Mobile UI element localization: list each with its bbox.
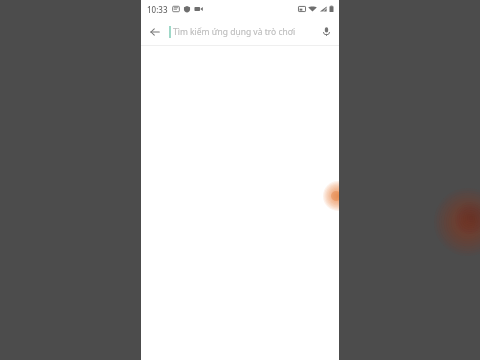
button[interactable]: Tìm kiếm ứng dụng và trò chơi xyxy=(169,18,313,45)
button[interactable]: Tìm kiếm bằng giọng nói xyxy=(313,18,339,45)
staticText: Tìm kiếm ứng dụng và trò chơi xyxy=(173,26,296,38)
staticText: 10:33 xyxy=(147,4,168,15)
button[interactable]: Quay lại xyxy=(141,18,169,45)
